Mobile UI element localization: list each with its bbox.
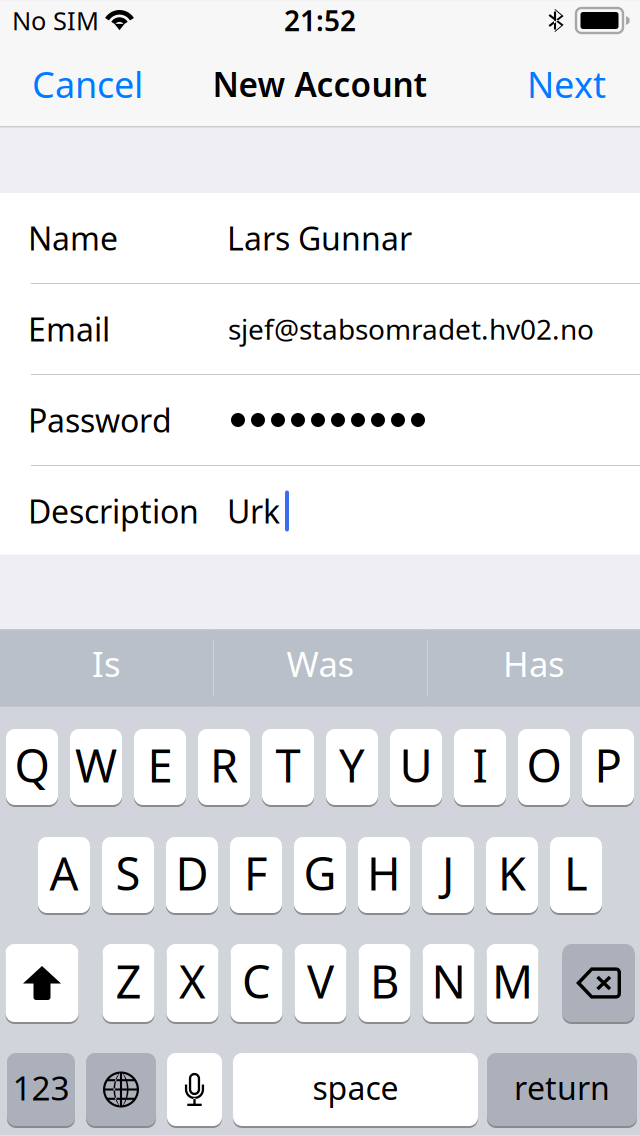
staticText: Cancel xyxy=(32,60,143,108)
button[interactable]: Delete xyxy=(562,942,634,1023)
staticText: B xyxy=(370,951,399,1011)
button[interactable]: Password xyxy=(0,375,640,465)
button[interactable]: Has xyxy=(428,629,640,706)
staticText: C xyxy=(242,951,271,1011)
staticText: O xyxy=(526,735,561,795)
button[interactable]: B xyxy=(358,942,410,1023)
staticText: Was xyxy=(286,640,354,686)
staticText: Next xyxy=(527,60,606,108)
staticText: Urk xyxy=(227,490,280,532)
button[interactable]: Name xyxy=(0,193,640,283)
staticText: N xyxy=(431,951,465,1011)
staticText: Q xyxy=(14,735,49,795)
staticText: S xyxy=(115,843,140,903)
button[interactable]: space xyxy=(233,1051,478,1127)
staticText: H xyxy=(367,843,401,903)
staticText: Name xyxy=(28,217,118,259)
staticText: Has xyxy=(503,640,565,686)
button[interactable]: L xyxy=(550,835,602,914)
button[interactable]: I xyxy=(454,727,506,806)
button[interactable]: P xyxy=(582,727,634,806)
button[interactable]: Z xyxy=(102,942,154,1023)
button[interactable]: C xyxy=(230,942,282,1023)
button[interactable]: Dictation xyxy=(167,1051,222,1127)
staticText: sjef@stabsomradet.hv02.no xyxy=(228,310,594,348)
staticText: T xyxy=(275,735,300,795)
button[interactable]: return xyxy=(487,1051,637,1127)
staticText: E xyxy=(147,735,172,795)
button[interactable]: Is xyxy=(0,629,213,706)
staticText: G xyxy=(303,843,336,903)
button[interactable]: G xyxy=(294,835,346,914)
staticText: V xyxy=(307,951,334,1011)
button[interactable]: J xyxy=(422,835,474,914)
button[interactable]: X xyxy=(166,942,218,1023)
staticText: No SIM xyxy=(12,4,99,37)
button[interactable]: Was xyxy=(214,629,427,706)
staticText: Description xyxy=(28,490,199,532)
staticText: Is xyxy=(92,640,121,686)
staticText: F xyxy=(244,843,268,903)
staticText: A xyxy=(49,843,78,903)
staticText: I xyxy=(472,735,487,795)
staticText: Password xyxy=(28,399,172,441)
button[interactable]: Next keyboard xyxy=(86,1051,156,1127)
button[interactable]: Next xyxy=(501,40,640,127)
button[interactable]: U xyxy=(390,727,442,806)
staticText: R xyxy=(210,735,238,795)
button[interactable]: Description xyxy=(0,466,640,556)
button[interactable]: W xyxy=(70,727,122,806)
staticText: M xyxy=(492,951,533,1011)
staticText: Z xyxy=(115,951,141,1011)
staticText: W xyxy=(75,735,117,795)
staticText: L xyxy=(564,843,588,903)
button[interactable]: Shift xyxy=(5,942,78,1023)
button[interactable]: 123 xyxy=(7,1051,75,1127)
button[interactable]: K xyxy=(486,835,538,914)
button[interactable]: S xyxy=(102,835,154,914)
button[interactable]: Cancel xyxy=(0,40,169,127)
button[interactable]: M xyxy=(486,942,538,1023)
staticText: X xyxy=(179,951,206,1011)
staticText: J xyxy=(442,843,454,903)
staticText: Y xyxy=(339,735,365,795)
staticText: New Account xyxy=(212,62,427,106)
staticText: K xyxy=(498,843,526,903)
button[interactable]: H xyxy=(358,835,410,914)
staticText: U xyxy=(399,735,432,795)
button[interactable]: F xyxy=(230,835,282,914)
staticText: space xyxy=(312,1066,398,1109)
button[interactable]: V xyxy=(294,942,346,1023)
staticText: Email xyxy=(28,308,110,350)
staticText: 123 xyxy=(12,1065,69,1110)
staticText: 21:52 xyxy=(284,2,356,39)
button[interactable]: A xyxy=(38,835,90,914)
staticText: P xyxy=(594,735,621,795)
button[interactable]: D xyxy=(166,835,218,914)
staticText: Lars Gunnar xyxy=(227,217,412,259)
button[interactable]: O xyxy=(518,727,570,806)
button[interactable]: E xyxy=(134,727,186,806)
button[interactable]: Email xyxy=(0,284,640,374)
staticText: return xyxy=(514,1066,610,1109)
staticText: D xyxy=(175,843,208,903)
button[interactable]: Y xyxy=(326,727,378,806)
button[interactable]: N xyxy=(422,942,474,1023)
button[interactable]: T xyxy=(262,727,314,806)
button[interactable]: Q xyxy=(6,727,58,806)
button[interactable]: R xyxy=(198,727,250,806)
